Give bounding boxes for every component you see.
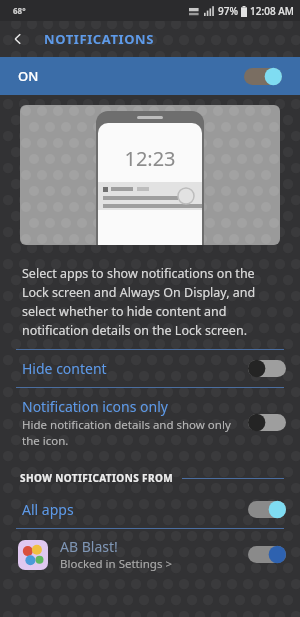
button[interactable]: Hide content bbox=[0, 350, 300, 387]
staticText: 68° bbox=[13, 5, 26, 16]
button[interactable]: ON bbox=[0, 57, 300, 95]
staticText: Hide notification details and show only … bbox=[22, 417, 238, 448]
button[interactable]: Notification icons only bbox=[0, 388, 300, 457]
button[interactable]: Back bbox=[0, 21, 36, 57]
staticText: ON bbox=[18, 67, 39, 85]
staticText: AB Blast! bbox=[60, 537, 118, 556]
staticText: Blocked in Settings > bbox=[60, 556, 172, 572]
staticText: NOTIFICATIONS bbox=[44, 30, 155, 48]
staticText: Select apps to show notifications on the… bbox=[22, 265, 282, 339]
staticText: Hide content bbox=[22, 359, 107, 378]
staticText: SHOW NOTIFICATIONS FROM bbox=[20, 471, 174, 485]
staticText: 12:08 AM bbox=[250, 4, 294, 18]
staticText: Notification icons only bbox=[22, 397, 168, 416]
staticText: 12:23 bbox=[98, 145, 202, 172]
staticText: All apps bbox=[22, 500, 74, 519]
staticText: 97% bbox=[218, 4, 238, 18]
button[interactable]: AB Blast! bbox=[0, 529, 300, 572]
button[interactable]: All apps bbox=[0, 491, 300, 528]
